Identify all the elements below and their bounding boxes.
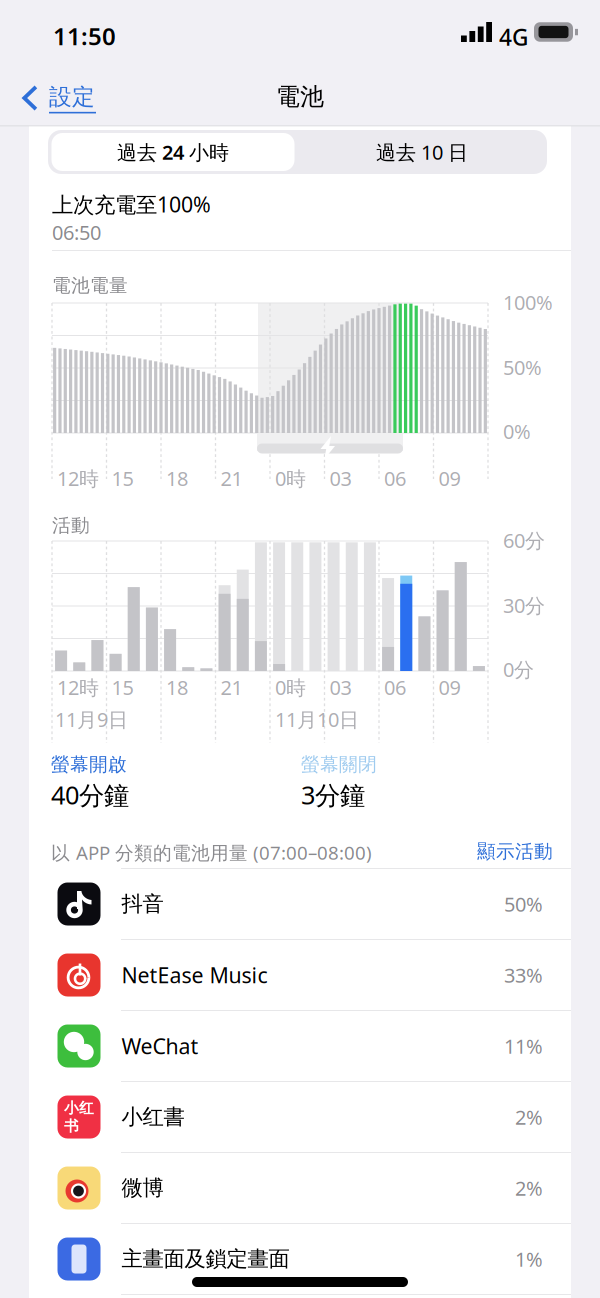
staticText: 06 — [384, 465, 406, 492]
button[interactable]: 小红书 — [29, 1082, 571, 1152]
button[interactable]: 螢幕關閉 — [301, 753, 541, 812]
staticText: 11:50 — [53, 20, 116, 52]
button[interactable]: 微博 — [29, 1153, 571, 1223]
staticText: 微博 — [121, 1175, 163, 1201]
staticText: 21 — [220, 674, 242, 701]
staticText: 4G — [499, 22, 528, 52]
button[interactable]: WeChat — [29, 1011, 571, 1081]
staticText: 小红書 — [121, 1104, 184, 1130]
staticText: 3分鐘 — [301, 778, 365, 811]
staticText: 50% — [504, 891, 543, 917]
staticText: 18 — [166, 465, 188, 492]
staticText: 09 — [438, 465, 460, 492]
staticText: 0時 — [275, 465, 306, 492]
button[interactable]: 抖音 — [29, 869, 571, 939]
staticText: WeChat — [121, 1032, 198, 1060]
staticText: 過去 24 小時 — [117, 139, 229, 165]
staticText: 0時 — [275, 674, 306, 701]
staticText: 過去 10 日 — [376, 139, 468, 165]
staticText: 21 — [220, 465, 242, 492]
staticText: 15 — [111, 465, 133, 492]
button[interactable]: 過去 10 日 — [297, 130, 546, 174]
staticText: 0% — [503, 418, 531, 445]
button[interactable]: 設定 — [14, 76, 102, 120]
button[interactable]: 螢幕開啟 — [51, 753, 291, 812]
staticText: 電池 — [276, 82, 324, 111]
staticText: 33% — [504, 962, 543, 988]
button[interactable]: 過去 24 小時 — [48, 130, 297, 174]
staticText: 主畫面及鎖定畫面 — [121, 1246, 289, 1272]
staticText: 11月10日 — [275, 706, 359, 733]
staticText: 2% — [515, 1104, 543, 1130]
staticText: 抖音 — [121, 891, 163, 917]
button[interactable]: NetEase Music — [29, 940, 571, 1010]
staticText: NetEase Music — [121, 961, 267, 989]
staticText: 06:50 — [52, 219, 101, 246]
staticText: 以 APP 分類的電池用量 (07:00–08:00) — [51, 840, 372, 865]
staticText: 30分 — [503, 592, 545, 619]
staticText: 2% — [515, 1175, 543, 1201]
staticText: 1% — [515, 1246, 543, 1272]
staticText: 18 — [166, 674, 188, 701]
staticText: 螢幕關閉 — [301, 753, 377, 776]
staticText: 螢幕開啟 — [51, 753, 127, 776]
staticText: 11% — [504, 1033, 543, 1059]
staticText: 12時 — [57, 465, 99, 492]
staticText: 0分 — [503, 656, 534, 683]
staticText: 設定 — [49, 83, 95, 111]
staticText: 100% — [503, 289, 553, 316]
staticText: 15 — [111, 674, 133, 701]
button[interactable]: 顯示活動 — [477, 840, 553, 863]
staticText: 上次充電至100% — [52, 190, 211, 218]
staticText: 活動 — [52, 514, 90, 537]
staticText: 小红书 — [64, 1099, 94, 1135]
staticText: 03 — [329, 465, 351, 492]
staticText: 06 — [384, 674, 406, 701]
staticText: 顯示活動 — [477, 840, 553, 863]
staticText: 11月9日 — [55, 706, 128, 733]
staticText: 40分鐘 — [51, 778, 129, 811]
staticText: 60分 — [503, 527, 545, 554]
button[interactable]: 主畫面及鎖定畫面 — [29, 1224, 571, 1294]
staticText: 電池電量 — [52, 274, 128, 297]
staticText: 03 — [329, 674, 351, 701]
staticText: 12時 — [57, 674, 99, 701]
staticText: 09 — [438, 674, 460, 701]
staticText: 50% — [503, 354, 542, 381]
